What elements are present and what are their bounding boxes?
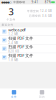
button[interactable]: 文件 [0, 89, 28, 100]
button[interactable]: 扫描 PDF 文件 [0, 53, 56, 62]
staticText: webca.pdf [8, 27, 25, 32]
staticText: 2.4 MB [8, 41, 18, 45]
staticText: 我的 [39, 95, 45, 98]
staticText: 最近文件 [2, 23, 14, 27]
staticText: 1.2 MB [8, 32, 18, 36]
button[interactable]: 我的 [28, 89, 56, 100]
staticText: 820 KB [8, 50, 19, 53]
staticText: ●●●●○ 中国移动 [1, 1, 25, 4]
staticText: 文件 [11, 95, 17, 98]
staticText: 1.8 MB [8, 58, 18, 62]
staticText: 9:41 [31, 0, 38, 4]
staticText: 可用空间 12.4 GB [27, 9, 52, 13]
staticText: 扫描 PDF 文件 [8, 44, 33, 49]
button[interactable]: 扫描 PDF 文件 [0, 45, 56, 53]
staticText: 87% [45, 0, 51, 4]
button[interactable]: webca.pdf [0, 27, 56, 36]
staticText: 扫描 PDF 文件 [8, 35, 33, 41]
staticText: 扫描 PDF 文件 [8, 53, 33, 58]
staticText: 已用空间 3.6 GB [29, 14, 52, 18]
button[interactable]: 扫描 PDF 文件 [0, 36, 56, 45]
staticText: 个文件 [6, 18, 15, 21]
staticText: 3 [8, 5, 13, 18]
